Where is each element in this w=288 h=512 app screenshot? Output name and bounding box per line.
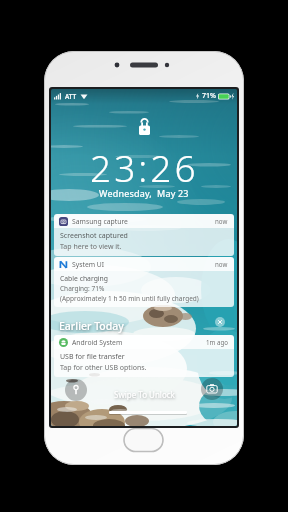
staticText: System UI: [72, 260, 105, 269]
button[interactable]: [215, 317, 225, 327]
button[interactable]: [201, 378, 223, 400]
staticText: Samsung capture: [72, 217, 128, 226]
staticText: now: [215, 260, 228, 268]
button[interactable]: Samsung capture: [54, 214, 234, 256]
staticText: (Approximately 1 h 50 min until fully ch…: [60, 294, 199, 303]
button[interactable]: System UI: [54, 257, 234, 307]
staticText: Earlier Today: [59, 319, 124, 333]
staticText: Screenshot captured: [60, 231, 128, 241]
staticText: Tap for other USB options.: [60, 363, 147, 373]
staticText: Wednesday, May 23: [99, 187, 189, 199]
staticText: now: [215, 217, 228, 225]
staticText: 23:26: [90, 142, 199, 192]
staticText: Tap here to view it.: [60, 242, 122, 252]
staticText: 1m ago: [206, 338, 228, 346]
staticText: Cable charging: [60, 274, 108, 283]
staticText: ATT: [65, 92, 77, 101]
button[interactable]: [65, 379, 87, 401]
staticText: USB for file transfer: [60, 352, 125, 362]
staticText: Charging: 71%: [60, 284, 105, 293]
staticText: 71%: [202, 91, 216, 101]
staticText: Swipe To Unlock: [114, 389, 175, 400]
button[interactable]: Android System: [54, 335, 234, 377]
staticText: Android System: [72, 338, 123, 347]
